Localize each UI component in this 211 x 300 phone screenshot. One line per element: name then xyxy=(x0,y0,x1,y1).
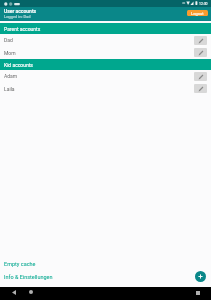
staticText: User accounts xyxy=(4,8,37,14)
button[interactable]: Back xyxy=(12,290,16,295)
staticText: Logged in: Dad xyxy=(4,14,31,19)
button[interactable]: Edit Laila xyxy=(194,84,207,93)
staticText: Mom xyxy=(4,50,194,56)
button[interactable]: Info & Einstellungen xyxy=(0,270,211,283)
button[interactable]: Home xyxy=(29,290,33,294)
button[interactable]: Edit Mom xyxy=(194,48,207,57)
staticText: Parent accounts xyxy=(4,26,41,32)
button[interactable]: Logout xyxy=(187,10,208,16)
button[interactable]: Add account xyxy=(195,271,206,282)
button[interactable]: Edit Dad xyxy=(194,36,207,45)
staticText: Logout xyxy=(191,11,204,16)
staticText: Kid accounts xyxy=(4,62,33,68)
button[interactable]: Empty cache xyxy=(0,257,211,270)
button[interactable]: Dad xyxy=(0,34,211,46)
button[interactable]: Adam xyxy=(0,70,211,82)
staticText: Dad xyxy=(4,37,194,43)
staticText: Info & Einstellungen xyxy=(4,274,53,280)
button[interactable]: Laila xyxy=(0,82,211,95)
staticText: Adam xyxy=(4,73,194,79)
button[interactable]: Edit Adam xyxy=(194,72,207,81)
staticText: Empty cache xyxy=(4,261,36,267)
button[interactable]: Mom xyxy=(0,46,211,59)
staticText: 12:30 xyxy=(199,2,208,6)
staticText: Laila xyxy=(4,86,194,92)
